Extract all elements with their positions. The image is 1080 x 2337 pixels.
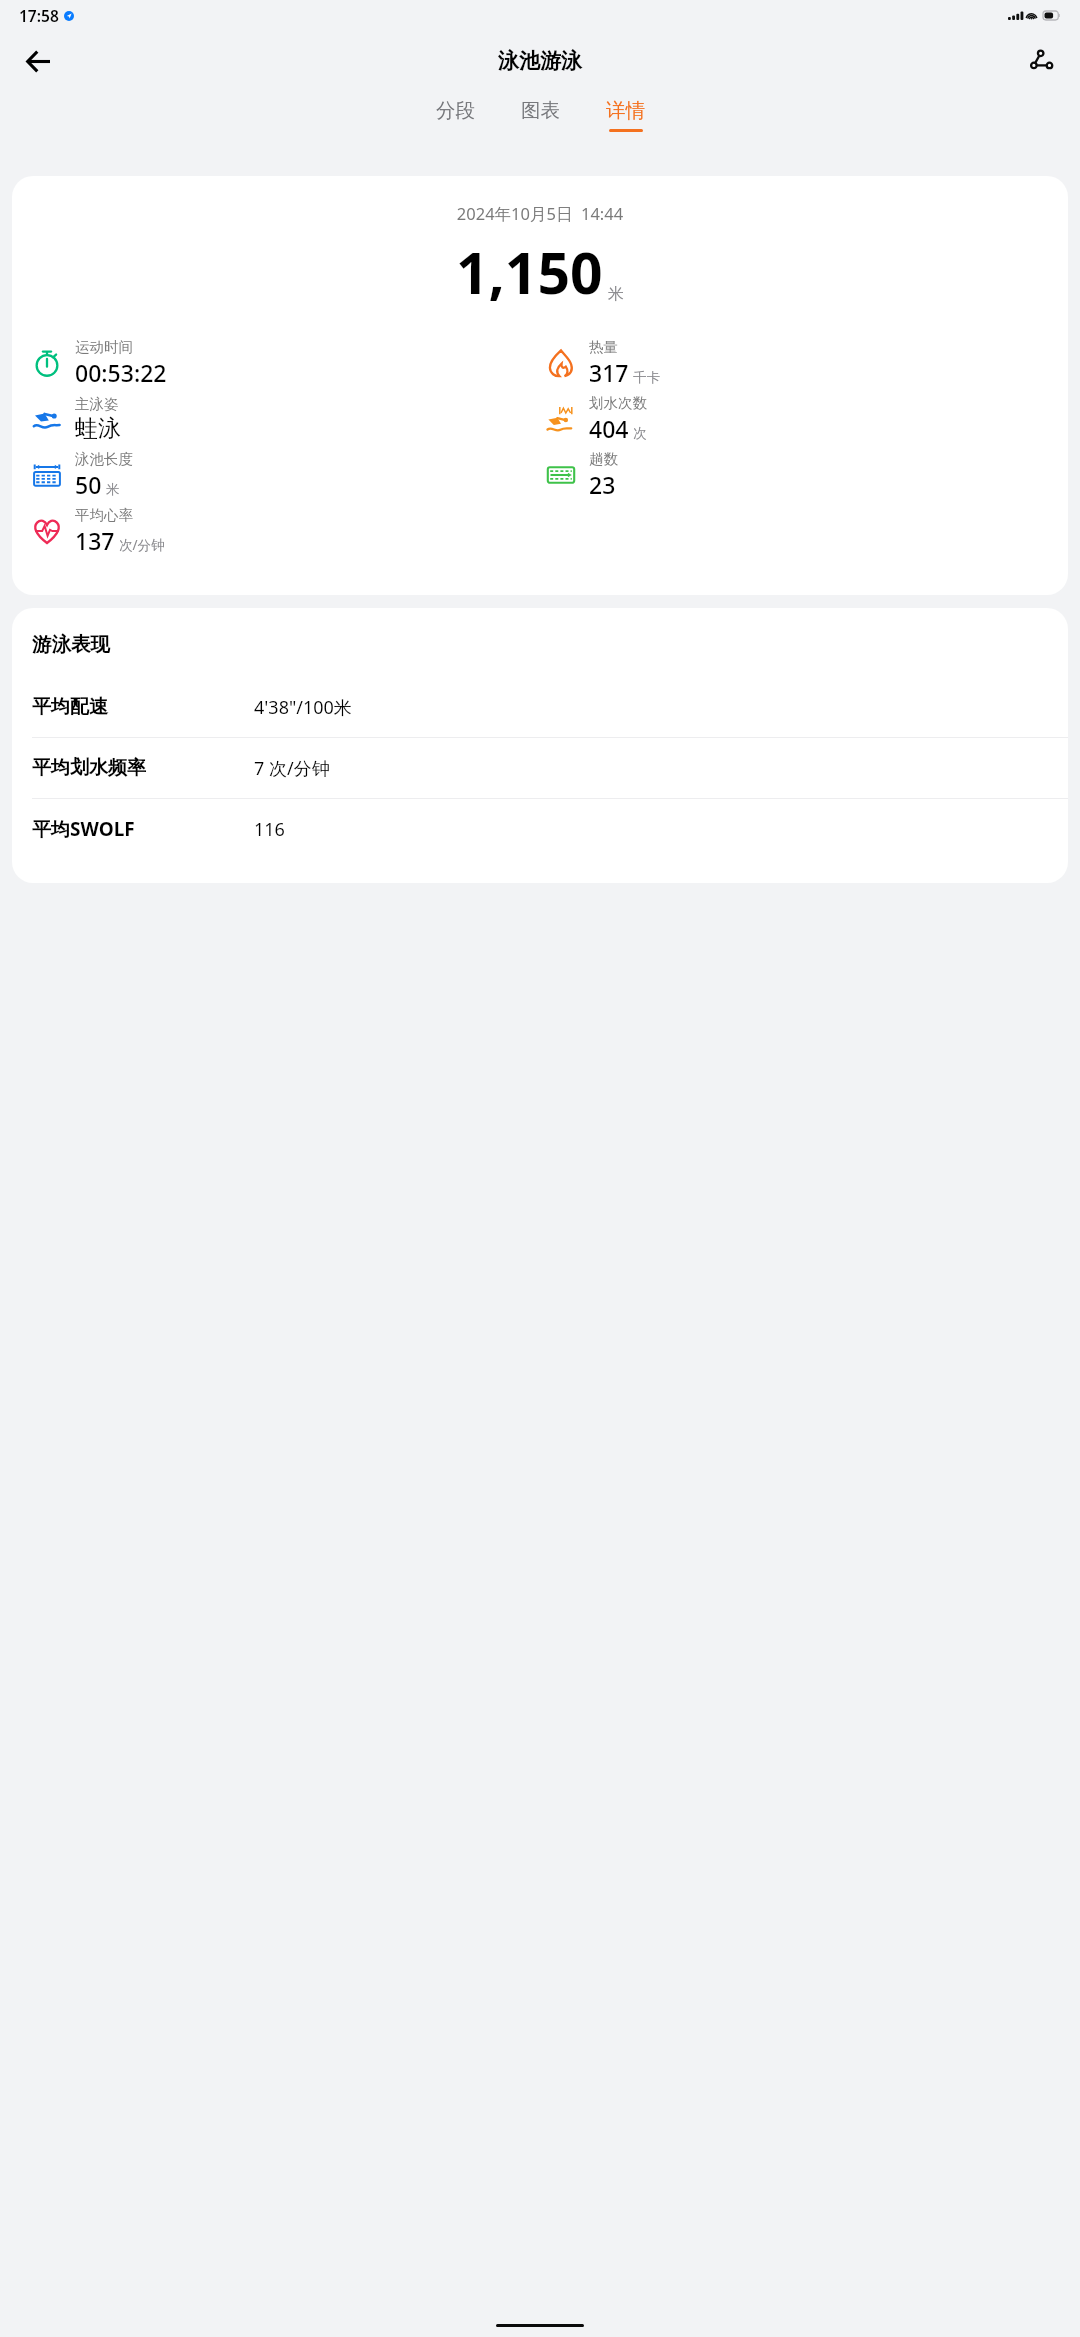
button[interactable]: 平均配速 [12,677,1068,738]
staticText: 划水次数 [589,394,647,412]
staticText: 趟数 [589,450,618,468]
button[interactable]: 平均SWOLF [12,799,1068,859]
button[interactable]: 图表 [513,92,568,138]
staticText: 米 [608,284,624,304]
staticText: 详情 [606,98,645,123]
staticText: 热量 [589,338,618,356]
staticText: 1,150 [456,233,603,311]
staticText: 蛙泳 [75,414,121,443]
staticText: 平均配速 [32,695,108,719]
staticText: 23 [589,469,616,500]
staticText: 米 [106,481,120,498]
staticText: 分段 [436,98,475,123]
staticText: 次/分钟 [119,536,165,554]
staticText: 图表 [521,98,560,123]
button[interactable]: Share [1016,35,1068,87]
button[interactable]: 分段 [428,92,483,138]
button[interactable]: Back [12,35,64,87]
staticText: 00:53:22 [75,357,167,388]
staticText: 泳池游泳 [498,48,582,74]
staticText: 次 [633,425,647,442]
staticText: 运动时间 [75,338,133,356]
staticText: 主泳姿 [75,395,119,413]
staticText: 4'38"/100米 [254,695,352,720]
staticText: 116 [254,817,285,842]
staticText: 泳池长度 [75,450,133,468]
staticText: 平均SWOLF [32,816,135,842]
staticText: 2024年10月5日 14:44 [12,202,1068,225]
staticText: 7 次/分钟 [254,756,330,781]
button[interactable]: 平均划水频率 [12,738,1068,799]
staticText: 404 [589,413,629,444]
staticText: 游泳表现 [32,632,110,657]
staticText: 137 [75,525,115,556]
staticText: 平均心率 [75,506,133,524]
staticText: 50 [75,469,102,500]
staticText: 千卡 [633,369,660,386]
button[interactable]: 详情 [598,92,653,138]
staticText: 317 [589,357,629,388]
staticText: 平均划水频率 [32,756,146,780]
staticText: 17:58 [19,5,59,26]
